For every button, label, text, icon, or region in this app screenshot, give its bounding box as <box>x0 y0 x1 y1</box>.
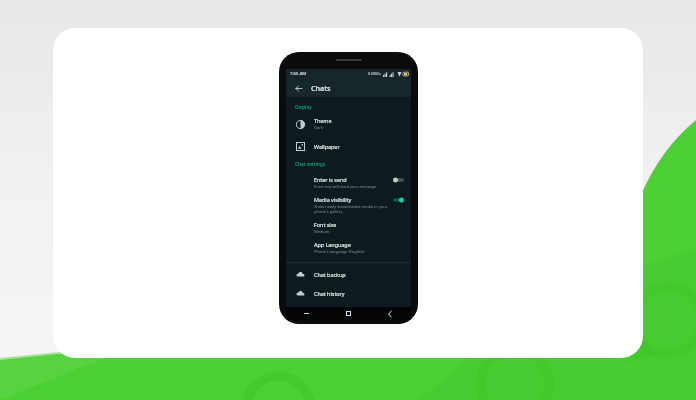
staticText: Chats <box>311 83 331 93</box>
staticText: 8.0KB/s <box>368 71 381 76</box>
button[interactable]: Chat backup <box>286 267 411 281</box>
staticText: Phone's language (English) <box>314 249 365 254</box>
button[interactable]: Chat history <box>286 286 411 300</box>
button[interactable]: Enter is send <box>286 172 411 192</box>
staticText: Media visibility <box>314 196 352 203</box>
staticText: Wallpaper <box>314 143 340 150</box>
button[interactable]: Font size <box>286 217 411 237</box>
staticText: Medium <box>314 229 330 234</box>
button[interactable]: Theme <box>286 115 411 132</box>
button[interactable]: Wallpaper <box>286 139 411 153</box>
staticText: Chat backup <box>314 271 346 278</box>
button[interactable]: Home <box>327 307 369 320</box>
button[interactable]: App Language <box>286 237 411 257</box>
staticText: Chat history <box>314 290 345 297</box>
staticText: Display <box>295 104 312 111</box>
staticText: Theme <box>314 117 332 124</box>
button[interactable]: Recents <box>286 307 327 320</box>
staticText: Chat settings <box>295 161 326 168</box>
staticText: 7:55 AM <box>290 71 307 77</box>
staticText: Dark <box>314 125 323 130</box>
staticText: Show newly downloaded media in your phon… <box>314 204 388 214</box>
button[interactable]: Back <box>369 307 411 320</box>
button[interactable]: Media visibility <box>286 192 411 217</box>
button[interactable]: Back <box>292 82 304 94</box>
staticText: Enter is send <box>314 176 347 183</box>
staticText: App Language <box>314 241 351 248</box>
staticText: Font size <box>314 221 337 228</box>
staticText: Enter key will send your message <box>314 184 377 189</box>
